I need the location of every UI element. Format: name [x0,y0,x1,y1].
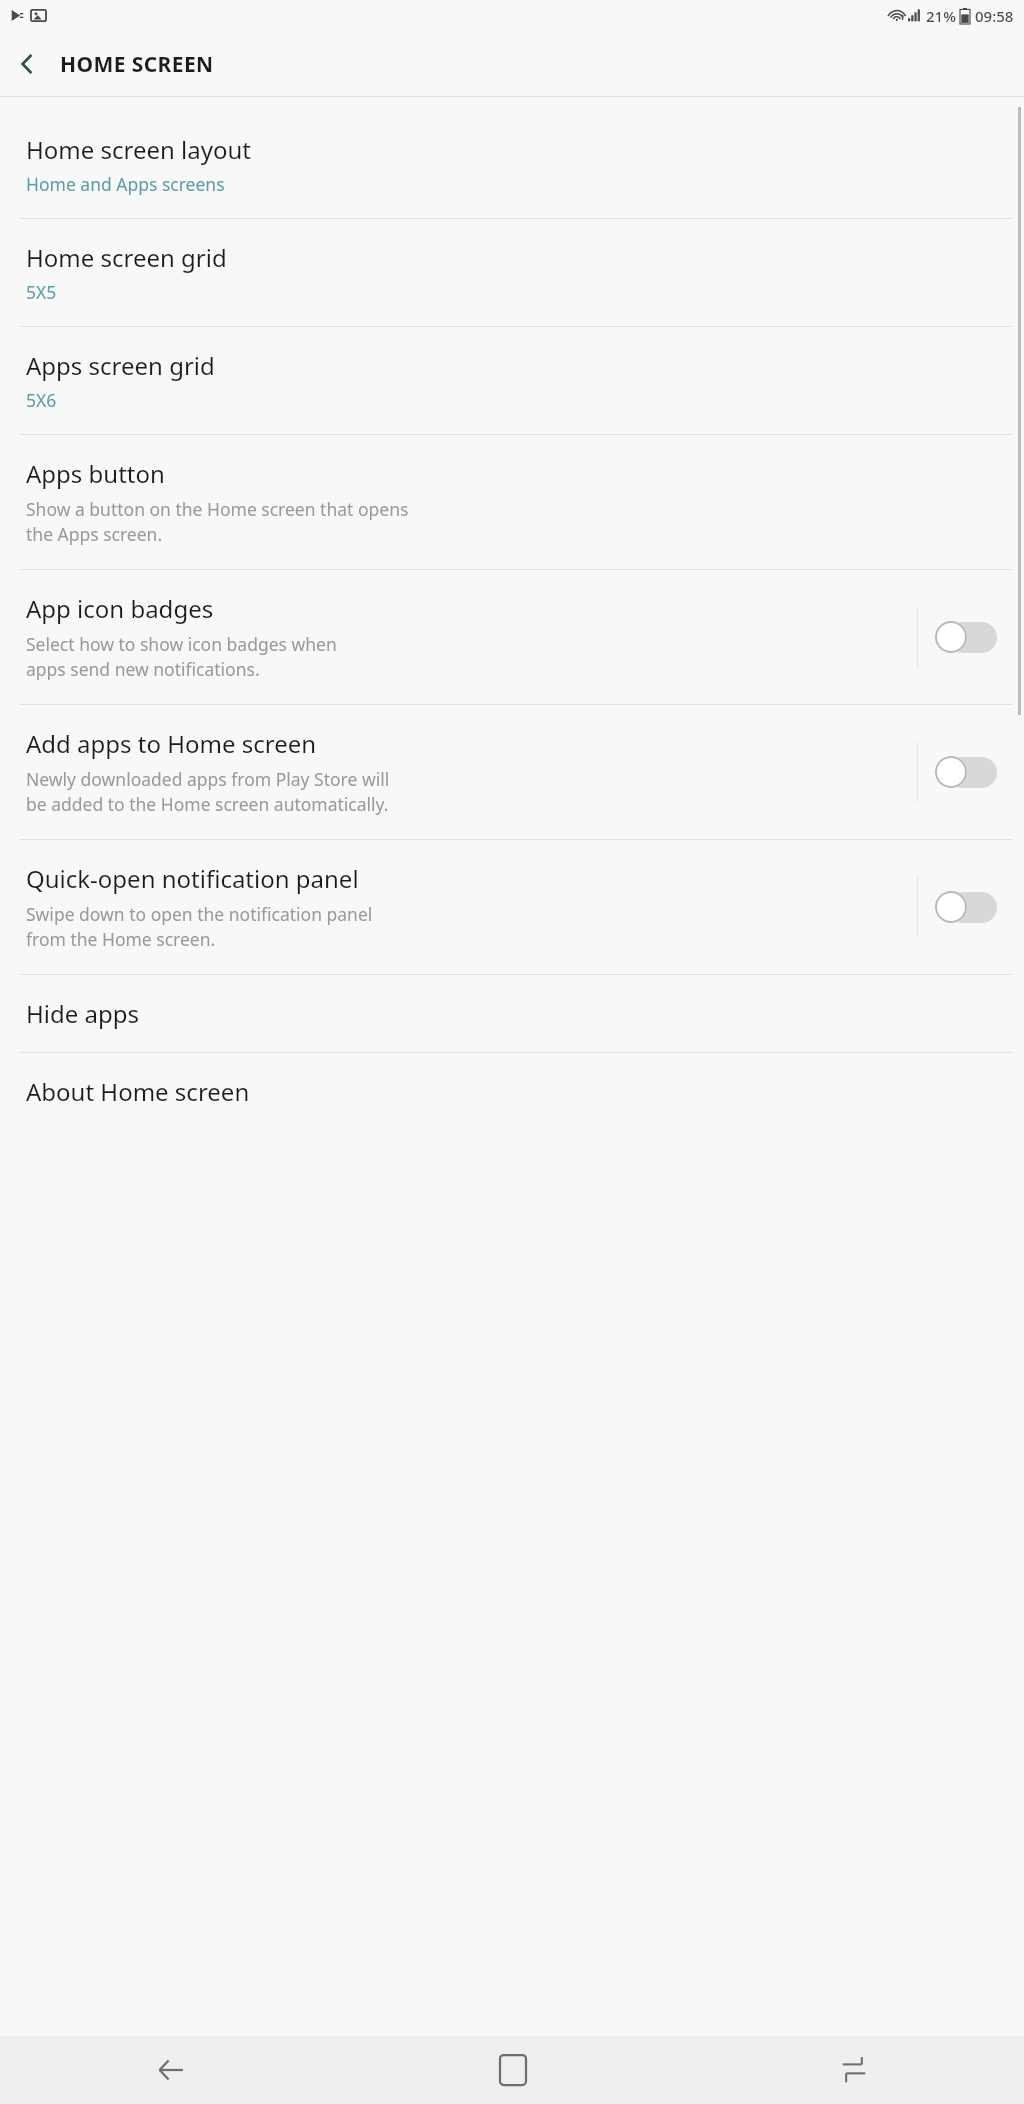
button[interactable]: Recent apps [683,2036,1024,2104]
staticText: 21% [926,6,956,26]
staticText: 5X6 [26,388,57,412]
staticText: Home and Apps screens [26,172,225,196]
button[interactable]: Add apps to Home screen [0,705,1024,839]
staticText: Add apps to Home screen [26,727,317,760]
button[interactable]: Quick-open notification panel [0,840,1024,974]
staticText: Show a button on the Home screen that op… [26,497,409,547]
staticText: HOME SCREEN [60,50,214,79]
button[interactable]: Toggle App icon badges [918,602,1014,672]
button[interactable]: About Home screen [0,1053,1024,1130]
staticText: 09:58 [975,6,1014,26]
button[interactable]: Home screen grid [0,219,1024,326]
staticText: Hide apps [26,997,139,1030]
staticText: Quick-open notification panel [26,862,359,895]
staticText: Newly downloaded apps from Play Store wi… [26,767,390,817]
button[interactable]: Back [0,37,54,91]
button[interactable]: Toggle Quick-open notification panel [918,872,1014,942]
button[interactable]: Apps screen grid [0,327,1024,434]
button[interactable]: App icon badges [0,570,1024,704]
staticText: Apps button [26,457,165,490]
staticText: App icon badges [26,592,214,625]
button[interactable]: Hide apps [0,975,1024,1052]
button[interactable]: Apps button [0,435,1024,569]
staticText: 5X5 [26,280,57,304]
staticText: Select how to show icon badges when apps… [26,632,337,682]
staticText: Home screen layout [26,133,252,166]
button[interactable]: Home [342,2036,683,2104]
staticText: Swipe down to open the notification pane… [26,902,373,952]
staticText: Home screen grid [26,241,227,274]
button[interactable]: Toggle Add apps to Home screen [918,737,1014,807]
button[interactable]: Back [0,2036,342,2104]
staticText: About Home screen [26,1075,250,1108]
button[interactable]: Home screen layout [0,111,1024,218]
staticText: Apps screen grid [26,349,215,382]
